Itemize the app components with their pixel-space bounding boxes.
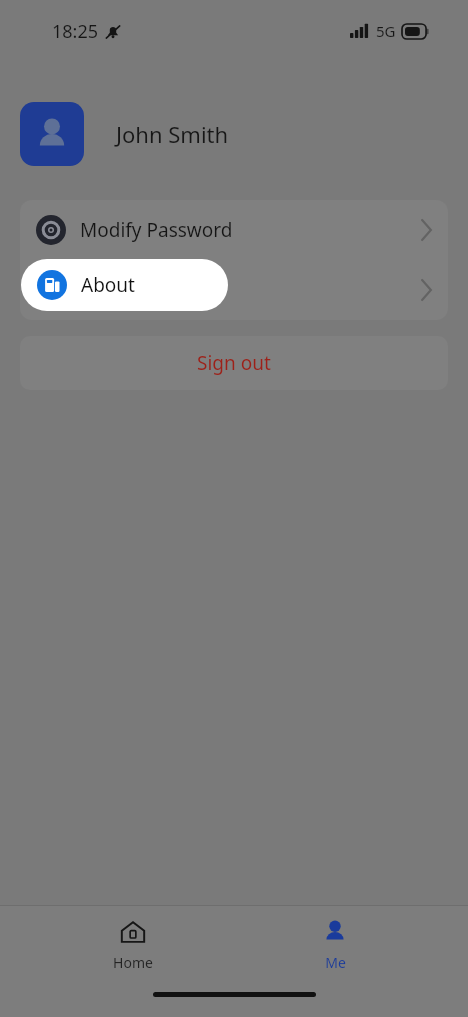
- button[interactable]: About: [20, 260, 448, 320]
- staticText: About: [81, 272, 135, 298]
- staticText: 18:25: [52, 19, 99, 44]
- button[interactable]: About: [21, 259, 228, 311]
- staticText: Modify Password: [80, 217, 233, 243]
- staticText: John Smith: [116, 119, 229, 149]
- staticText: About: [80, 277, 134, 303]
- staticText: 5G: [376, 21, 396, 41]
- button[interactable]: Home: [63, 906, 203, 984]
- button[interactable]: Me: [265, 906, 405, 984]
- staticText: Home: [113, 953, 153, 972]
- staticText: Me: [325, 953, 346, 972]
- staticText: Sign out: [197, 350, 271, 376]
- button[interactable]: Modify Password: [20, 200, 448, 260]
- button[interactable]: Sign out: [20, 336, 448, 390]
- button[interactable]: John Smith: [0, 100, 468, 168]
